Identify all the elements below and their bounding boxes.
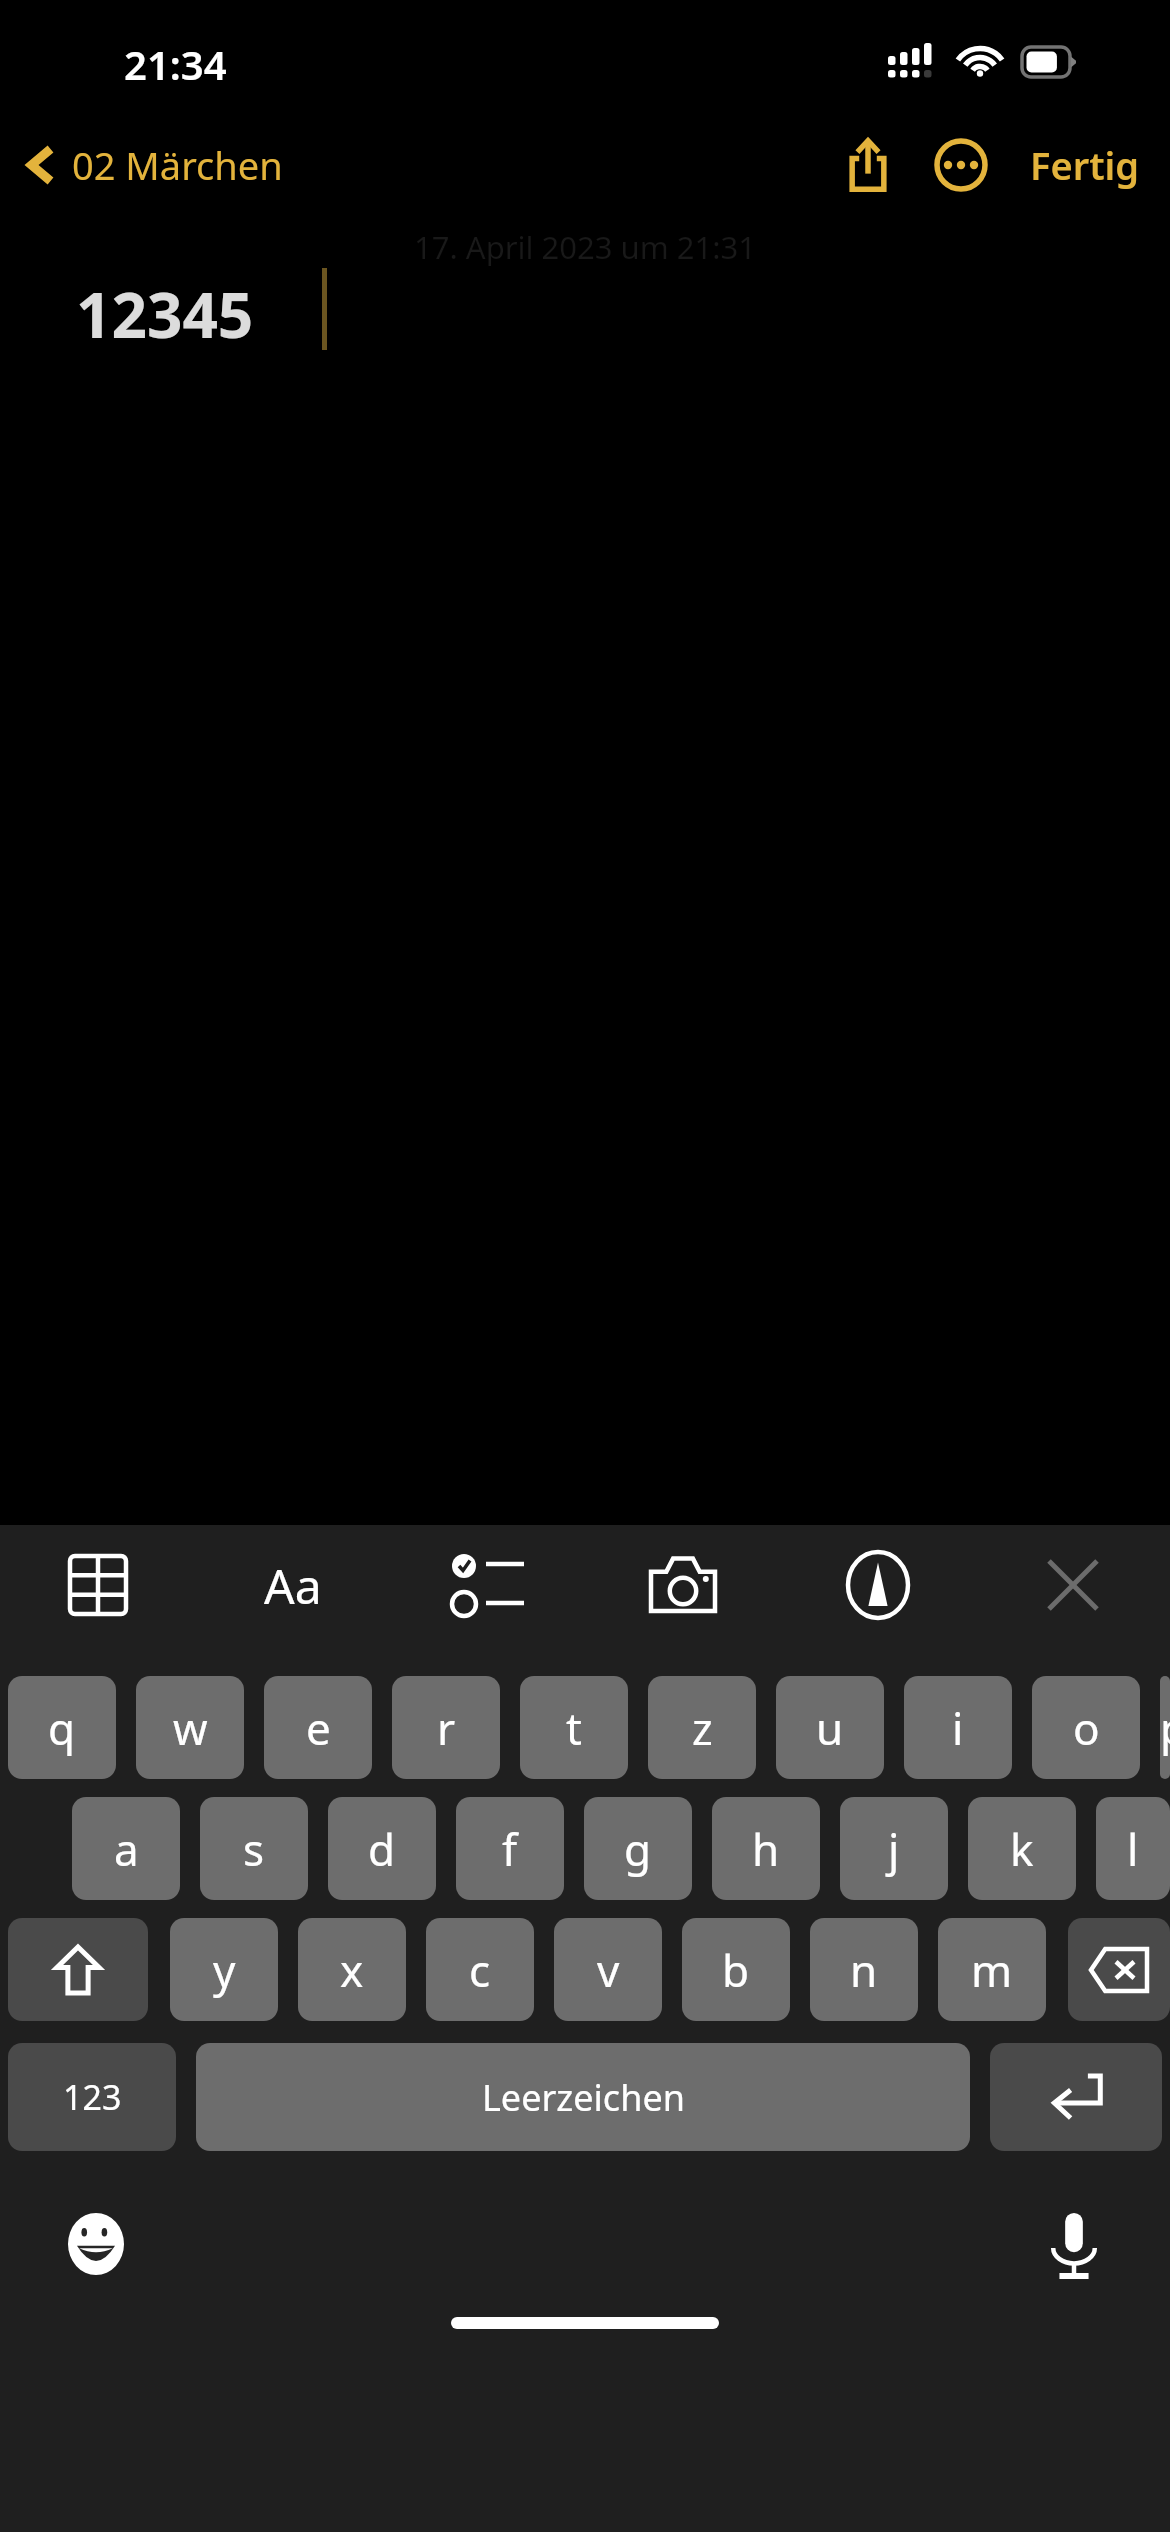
button[interactable]: z [648,1676,756,1779]
staticText: w [173,1698,208,1758]
staticText: i [952,1698,964,1758]
staticText: k [1010,1819,1034,1879]
button[interactable]: k [968,1797,1076,1900]
staticText: e [306,1698,331,1758]
staticText: v [597,1940,620,2000]
button[interactable]: o [1032,1676,1140,1779]
button[interactable]: l [1096,1797,1170,1900]
button[interactable]: u [776,1676,884,1779]
button[interactable]: Table [0,1525,195,1645]
button[interactable]: More options [912,128,1010,202]
staticText: 02 Märchen [72,139,283,191]
staticText: f [502,1819,518,1879]
button[interactable]: Share [824,128,912,202]
button[interactable]: Fertig [1010,129,1144,201]
button[interactable]: g [584,1797,692,1900]
button[interactable]: i [904,1676,1012,1779]
staticText: Aa [264,1553,322,1618]
button[interactable]: v [554,1918,662,2021]
button[interactable]: f [456,1797,564,1900]
staticText: p [1160,1698,1170,1758]
button[interactable]: Return [990,2043,1162,2151]
staticText: s [243,1819,265,1879]
staticText: n [850,1940,878,2000]
button[interactable]: x [298,1918,406,2021]
staticText: o [1073,1698,1100,1758]
staticText: r [437,1698,456,1758]
button[interactable]: Markup [780,1525,975,1645]
staticText: h [752,1819,780,1879]
button[interactable]: q [8,1676,116,1779]
button[interactable]: h [712,1797,820,1900]
button[interactable]: a [72,1797,180,1900]
button[interactable]: Shift [8,1918,148,2021]
button[interactable]: Emoji [56,2201,136,2287]
staticText: l [1127,1819,1139,1879]
staticText: g [624,1819,652,1879]
staticText: Fertig [1030,139,1140,191]
staticText: u [816,1698,844,1758]
button[interactable]: r [392,1676,500,1779]
staticText: 12345 [76,272,254,356]
staticText: m [971,1940,1013,2000]
button[interactable]: d [328,1797,436,1900]
button[interactable]: 02 Märchen [0,131,295,199]
button[interactable]: 123 [8,2043,176,2151]
staticText: 123 [63,2074,122,2120]
button[interactable]: Checklist [390,1525,585,1645]
button[interactable]: Close [975,1525,1170,1645]
button[interactable]: j [840,1797,948,1900]
staticText: 17. April 2023 um 21:31 [414,226,756,268]
staticText: x [340,1940,364,2000]
button[interactable]: m [938,1918,1046,2021]
staticText: d [368,1819,396,1879]
button[interactable]: y [170,1918,278,2021]
staticText: z [692,1698,713,1758]
button[interactable]: c [426,1918,534,2021]
button[interactable]: s [200,1797,308,1900]
button[interactable]: Camera [585,1525,780,1645]
button[interactable]: Format [195,1525,390,1645]
staticText: Leerzeichen [482,2073,685,2122]
button[interactable]: e [264,1676,372,1779]
staticText: q [48,1698,76,1758]
staticText: j [888,1819,900,1879]
staticText: c [469,1940,491,2000]
staticText: b [722,1940,750,2000]
button[interactable]: p [1160,1676,1170,1779]
button[interactable]: Backspace [1068,1918,1170,2021]
staticText: a [114,1819,139,1879]
button[interactable]: Leerzeichen [196,2043,970,2151]
button[interactable]: Dictation [1036,2201,1112,2295]
button[interactable]: t [520,1676,628,1779]
button[interactable]: n [810,1918,918,2021]
staticText: 21:34 [124,37,227,91]
staticText: y [213,1940,236,2000]
button[interactable]: w [136,1676,244,1779]
button[interactable]: b [682,1918,790,2021]
staticText: t [566,1698,582,1758]
